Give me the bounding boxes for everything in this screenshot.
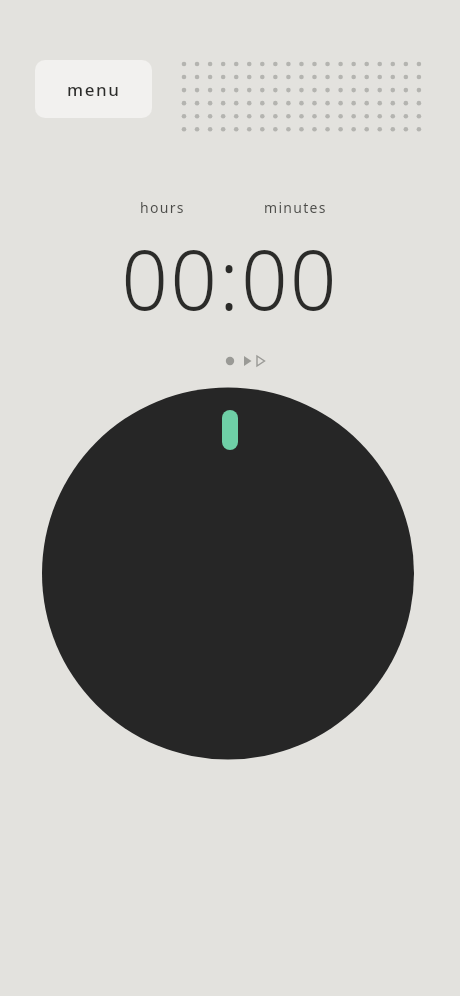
staticText: 00:00 — [121, 222, 339, 334]
button[interactable]: menu — [35, 60, 152, 118]
staticText: menu — [67, 78, 121, 101]
other: Playback status — [222, 353, 268, 369]
staticText: minutes — [264, 198, 327, 217]
button[interactable]: Timer dial — [0, 0, 460, 996]
staticText: hours — [140, 198, 185, 217]
